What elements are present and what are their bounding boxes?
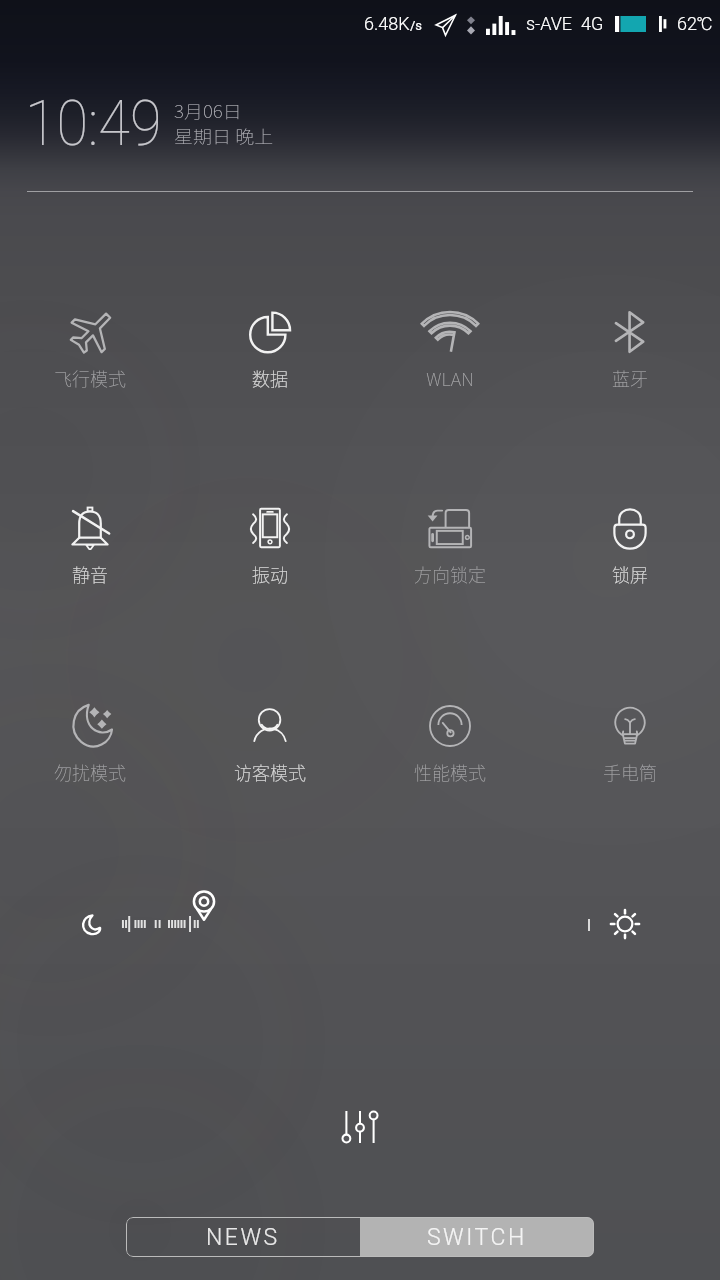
button[interactable]: 数据 xyxy=(180,294,360,394)
staticText: 静音 xyxy=(72,561,108,587)
staticText: 飞行模式 xyxy=(54,365,126,391)
staticText: s-AVE xyxy=(526,13,573,34)
button[interactable]: 蓝牙 xyxy=(540,294,720,394)
staticText: 62℃ xyxy=(677,13,713,34)
staticText: /s xyxy=(410,18,423,33)
button[interactable]: 静音 xyxy=(0,490,180,590)
button[interactable]: 锁屏 xyxy=(540,490,720,590)
button[interactable]: Night mode xyxy=(76,910,104,938)
button[interactable]: 10:49 xyxy=(0,0,720,1280)
button[interactable]: 飞行模式 xyxy=(0,294,180,394)
staticText: SWITCH xyxy=(427,1224,527,1251)
button[interactable]: 振动 xyxy=(180,490,360,590)
button[interactable]: 勿扰模式 xyxy=(0,688,180,788)
staticText: 6.48K xyxy=(364,13,410,34)
staticText: 访客模式 xyxy=(234,759,306,785)
staticText: 振动 xyxy=(252,561,288,587)
staticText: 10:49 xyxy=(25,87,162,161)
button[interactable]: 访客模式 xyxy=(180,688,360,788)
staticText: 4G xyxy=(581,13,604,34)
staticText: 星期日 晚上 xyxy=(174,123,274,148)
button[interactable]: Brightness xyxy=(607,906,643,942)
button[interactable]: NEWS xyxy=(126,1217,360,1257)
button[interactable]: Settings xyxy=(332,1099,388,1155)
staticText: 手电筒 xyxy=(603,759,657,785)
staticText: 数据 xyxy=(252,365,288,391)
staticText: 性能模式 xyxy=(414,759,486,785)
button[interactable]: WLAN xyxy=(360,294,540,394)
staticText: 锁屏 xyxy=(612,561,648,587)
staticText: WLAN xyxy=(426,365,474,391)
staticText: 3月06日 xyxy=(174,98,242,123)
button[interactable]: SWITCH xyxy=(360,1217,594,1257)
button[interactable]: 手电筒 xyxy=(540,688,720,788)
staticText: 蓝牙 xyxy=(612,365,648,391)
button[interactable]: 性能模式 xyxy=(360,688,540,788)
staticText: NEWS xyxy=(206,1224,280,1251)
button[interactable]: 方向锁定 xyxy=(360,490,540,590)
staticText: 方向锁定 xyxy=(414,561,486,587)
staticText: 勿扰模式 xyxy=(54,759,126,785)
